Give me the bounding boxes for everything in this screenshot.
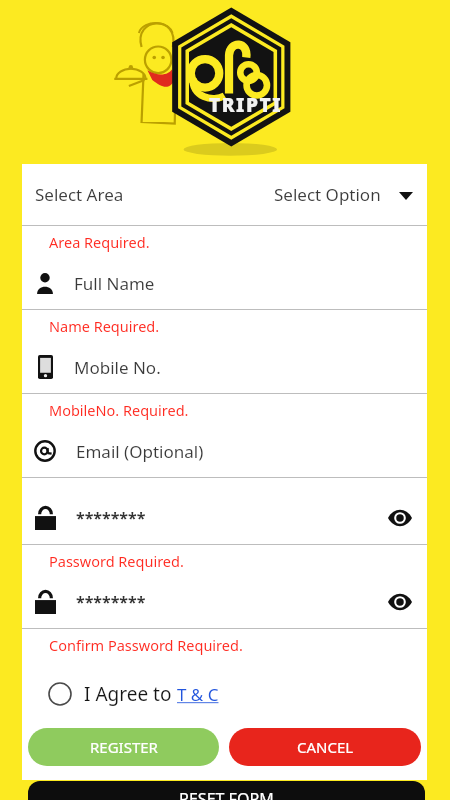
staticText: I Agree to: [84, 681, 177, 707]
button[interactable]: RESET FORM: [28, 781, 425, 800]
button[interactable]: Select Area: [22, 164, 427, 225]
staticText: Select Area: [35, 183, 124, 206]
button[interactable]: T & C: [177, 683, 219, 706]
other: Tripti logo: [125, 8, 320, 158]
button[interactable]: ********: [22, 492, 427, 544]
staticText: TRIPTI: [209, 92, 283, 118]
staticText: Full Name: [74, 272, 155, 295]
staticText: Area Required.: [49, 232, 150, 252]
staticText: Email (Optional): [76, 440, 204, 463]
staticText: CANCEL: [297, 737, 354, 757]
button[interactable]: Full Name: [22, 257, 427, 309]
button[interactable]: Mobile No.: [22, 341, 427, 393]
button[interactable]: Show password: [385, 587, 415, 617]
staticText: RESET FORM: [179, 788, 274, 800]
button[interactable]: ********: [22, 576, 427, 628]
staticText: REGISTER: [90, 737, 158, 757]
staticText: Name Required.: [49, 316, 160, 336]
staticText: MobileNo. Required.: [49, 400, 189, 420]
staticText: ********: [76, 507, 146, 529]
button[interactable]: Email (Optional): [22, 425, 427, 477]
button[interactable]: Show password: [385, 503, 415, 533]
button[interactable]: CANCEL: [229, 728, 421, 766]
staticText: Select Option: [274, 183, 381, 206]
staticText: Mobile No.: [74, 356, 161, 379]
button[interactable]: REGISTER: [28, 728, 219, 766]
staticText: ********: [76, 591, 146, 613]
staticText: Confirm Password Required.: [49, 635, 243, 655]
button[interactable]: I Agree to: [22, 672, 427, 716]
staticText: Password Required.: [49, 551, 184, 571]
